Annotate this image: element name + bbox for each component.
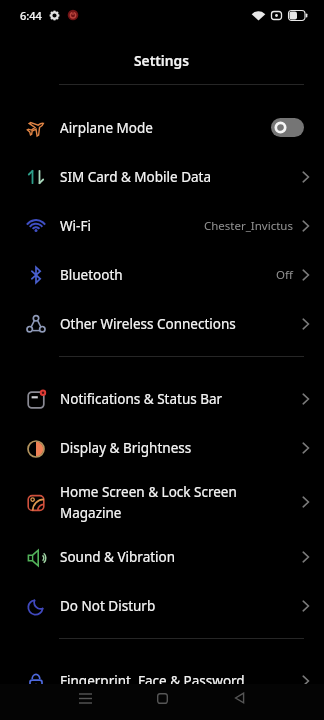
button[interactable] [271, 118, 304, 137]
staticText: 6:44 [20, 8, 42, 23]
staticText: Airplane Mode [60, 119, 153, 137]
button[interactable]: Bluetooth [0, 250, 324, 299]
button[interactable]: Display & Brightness [0, 423, 324, 472]
staticText: Off [276, 267, 293, 283]
button[interactable]: Other Wireless Connections [0, 299, 324, 348]
staticText: SIM Card & Mobile Data [60, 168, 212, 186]
staticText: Home Screen & Lock Screen Magazine [60, 483, 237, 522]
button[interactable] [124, 684, 201, 712]
button[interactable] [201, 684, 278, 712]
staticText: Sound & Vibration [60, 548, 176, 566]
button[interactable]: Wi-Fi [0, 201, 324, 250]
button[interactable]: Sound & Vibration [0, 532, 324, 581]
staticText: Notifications & Status Bar [60, 390, 223, 408]
staticText: Wi-Fi [60, 217, 91, 235]
staticText: Do Not Disturb [60, 597, 156, 615]
button[interactable]: Fingerprint, Face & Password [0, 656, 324, 705]
button[interactable]: SIM Card & Mobile Data [0, 152, 324, 201]
button[interactable] [47, 684, 124, 712]
staticText: Fingerprint, Face & Password [60, 672, 245, 690]
button[interactable]: Home Screen & Lock Screen Magazine [0, 472, 324, 532]
staticText: Settings [134, 51, 190, 70]
staticText: Other Wireless Connections [60, 315, 236, 333]
button[interactable]: Airplane Mode [0, 103, 324, 152]
staticText: Bluetooth [60, 266, 123, 284]
staticText: Chester_Invictus [204, 218, 293, 234]
staticText: Display & Brightness [60, 439, 192, 457]
button[interactable]: Notifications & Status Bar [0, 374, 324, 423]
button[interactable]: Do Not Disturb [0, 581, 324, 630]
